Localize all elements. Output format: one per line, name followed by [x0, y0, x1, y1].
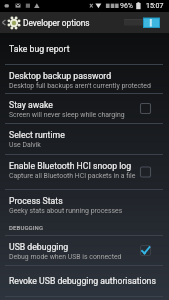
staticText: Developer options [23, 18, 90, 28]
button[interactable]: Select runtime [0, 124, 169, 154]
staticText: Capture all Bluetooth HCI packets in a f… [9, 172, 136, 180]
staticText: USB debugging [9, 242, 69, 252]
staticText: Screen will never sleep while charging [9, 111, 125, 119]
staticText: Take bug report [9, 44, 70, 54]
button[interactable]: Developer options on/off [0, 12, 169, 33]
staticText: Debug mode when USB is connected [9, 253, 122, 261]
staticText: Geeky stats about running processes [9, 207, 123, 215]
staticText: Stay awake [9, 100, 53, 110]
button[interactable]: Enable Bluetooth HCI snoop log [0, 155, 169, 189]
button[interactable]: Process Stats [0, 190, 169, 220]
staticText: Use Dalvik [9, 141, 41, 149]
staticText: Desktop full backups aren't currently pr… [9, 82, 151, 90]
button[interactable]: Navigate up [0, 12, 7, 33]
staticText: Select runtime [9, 130, 65, 140]
button[interactable]: USB debugging [0, 236, 169, 265]
staticText: 96% [120, 2, 133, 10]
staticText: Desktop backup password [9, 71, 112, 81]
staticText: Enable Bluetooth HCI snoop log [9, 161, 132, 171]
staticText: 15:07 [146, 2, 164, 10]
staticText: Revoke USB debugging authorisations [9, 276, 156, 286]
staticText: DEBUGGING [9, 224, 44, 231]
button[interactable]: Revoke USB debugging authorisations [0, 266, 169, 296]
button[interactable]: Take bug report [0, 33, 169, 64]
button[interactable]: Desktop backup password [0, 65, 169, 93]
staticText: Process Stats [9, 196, 63, 206]
button[interactable]: Stay awake [0, 94, 169, 123]
